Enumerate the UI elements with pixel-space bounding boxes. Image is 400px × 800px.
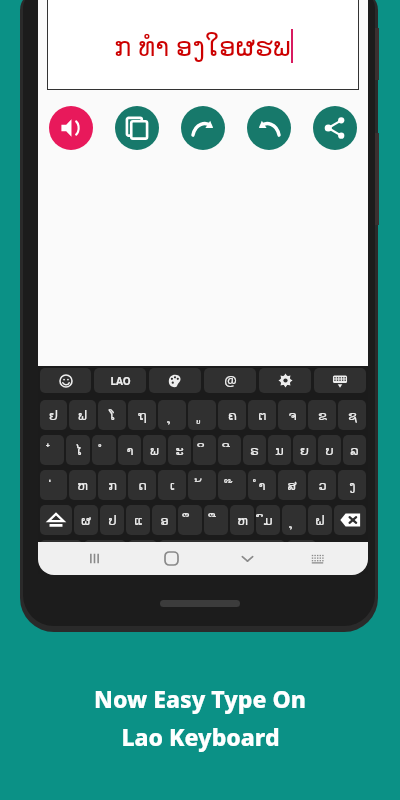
button[interactable]: Home bbox=[159, 546, 184, 571]
button[interactable]: ງ bbox=[338, 470, 366, 500]
staticText: ຣ bbox=[250, 443, 259, 458]
button[interactable]: Emoji bbox=[40, 368, 91, 393]
button[interactable]: ຕ bbox=[248, 400, 276, 430]
staticText: ຈ bbox=[288, 408, 297, 423]
button[interactable]: ່ bbox=[40, 470, 67, 500]
button[interactable]: ພ bbox=[143, 435, 166, 465]
button[interactable]: ນ bbox=[268, 435, 291, 465]
button[interactable]: ບ bbox=[318, 435, 341, 465]
button[interactable]: Undo bbox=[247, 106, 291, 150]
button[interactable]: ຫ bbox=[69, 470, 96, 500]
button[interactable]: Copy bbox=[115, 106, 159, 150]
button[interactable]: ໋ bbox=[40, 435, 64, 465]
button[interactable]: Settings bbox=[259, 368, 311, 393]
button[interactable]: Enter bbox=[320, 540, 364, 571]
staticText: ຜ bbox=[81, 513, 91, 528]
staticText: Now Easy Type On bbox=[94, 683, 306, 714]
button[interactable]: . bbox=[287, 540, 316, 571]
staticText: ດ bbox=[138, 478, 147, 493]
staticText: ຳ bbox=[258, 478, 266, 493]
button[interactable]: ແ bbox=[126, 505, 150, 535]
button[interactable]: ລ bbox=[343, 435, 366, 465]
button[interactable]: ະ bbox=[168, 435, 191, 465]
button[interactable]: Keyboard bbox=[305, 546, 330, 571]
button[interactable]: ເ bbox=[158, 470, 186, 500]
staticText: ABC bbox=[95, 549, 115, 563]
button[interactable]: ກ bbox=[98, 470, 126, 500]
button[interactable]: າ bbox=[118, 435, 141, 465]
staticText: ຫ bbox=[77, 478, 88, 493]
staticText: ຫ bbox=[237, 513, 248, 528]
button[interactable]: ີ bbox=[218, 435, 241, 465]
button[interactable]: ?123 bbox=[40, 540, 82, 571]
button[interactable]: ຍ bbox=[293, 435, 316, 465]
button[interactable]: ຝ bbox=[308, 505, 332, 535]
button[interactable]: Share bbox=[313, 106, 357, 150]
staticText: ບ bbox=[325, 443, 334, 458]
staticText: ແ bbox=[134, 513, 143, 528]
button[interactable]: ຈ bbox=[278, 400, 306, 430]
staticText: ຢ bbox=[49, 408, 58, 423]
button[interactable]: ປ bbox=[100, 505, 124, 535]
staticText: ກ bbox=[108, 478, 117, 493]
button[interactable]: ຄ bbox=[218, 400, 246, 430]
button[interactable]: Theme bbox=[149, 368, 201, 393]
button[interactable]: Symbols bbox=[204, 368, 256, 393]
button[interactable]: ຸ bbox=[158, 400, 186, 430]
staticText: ຝ bbox=[315, 513, 325, 528]
button[interactable]: ົມ bbox=[256, 505, 280, 535]
staticText: ໄ bbox=[75, 443, 82, 458]
button[interactable]: Hide keyboard bbox=[314, 368, 366, 393]
button[interactable]: ໂ bbox=[98, 400, 126, 430]
button[interactable]: Backspace bbox=[334, 505, 366, 535]
staticText: ອ bbox=[160, 513, 169, 528]
button[interactable]: Speak bbox=[49, 106, 93, 150]
button[interactable]: Back bbox=[235, 546, 260, 571]
staticText: Lao Keyboard bbox=[121, 721, 280, 752]
button[interactable]: Shift bbox=[40, 505, 72, 535]
button[interactable]: Space bbox=[159, 540, 285, 571]
button[interactable]: Recents bbox=[82, 546, 107, 571]
button[interactable]: ຶ bbox=[178, 505, 202, 535]
staticText: ວ bbox=[318, 478, 327, 493]
staticText: ຍ bbox=[300, 443, 309, 458]
button[interactable]: ິ bbox=[193, 435, 216, 465]
staticText: ຖ bbox=[138, 408, 147, 423]
button[interactable]: ຣ bbox=[243, 435, 266, 465]
staticText: ຕ bbox=[258, 408, 267, 423]
button[interactable]: ູ bbox=[188, 400, 216, 430]
staticText: ະ bbox=[175, 443, 184, 458]
staticText: ສ bbox=[287, 478, 297, 493]
button[interactable]: ວ bbox=[308, 470, 336, 500]
button[interactable]: ABC bbox=[84, 540, 126, 571]
staticText: ຟ bbox=[78, 408, 87, 423]
button[interactable]: ດ bbox=[128, 470, 156, 500]
staticText: ເ bbox=[170, 478, 175, 493]
button[interactable]: ຊ bbox=[338, 400, 366, 430]
staticText: ປ bbox=[108, 513, 117, 528]
button[interactable]: ຜ bbox=[74, 505, 98, 535]
button[interactable]: ອ bbox=[152, 505, 176, 535]
button[interactable]: Redo bbox=[181, 106, 225, 150]
button[interactable]: ໄ bbox=[66, 435, 90, 465]
button[interactable]: ໍ bbox=[92, 435, 116, 465]
button[interactable]: ຖ bbox=[128, 400, 156, 430]
button[interactable]: ຂ bbox=[308, 400, 336, 430]
staticText: @ bbox=[224, 371, 237, 390]
button[interactable]: ກ ທຳ ອງໃອຜຮພ bbox=[47, 0, 359, 90]
button[interactable]: ສ bbox=[278, 470, 306, 500]
button[interactable]: ຟ bbox=[69, 400, 96, 430]
button[interactable]: ໊ bbox=[218, 470, 246, 500]
button[interactable]: ຳ bbox=[248, 470, 276, 500]
staticText: າ bbox=[126, 443, 134, 458]
button[interactable]: ຢ bbox=[40, 400, 67, 430]
button[interactable]: , bbox=[128, 540, 157, 571]
button[interactable]: ື bbox=[204, 505, 228, 535]
button[interactable]: ຸ bbox=[282, 505, 306, 535]
button[interactable]: ້ bbox=[188, 470, 216, 500]
button[interactable]: Language bbox=[94, 368, 146, 393]
button[interactable]: ຫ bbox=[230, 505, 254, 535]
